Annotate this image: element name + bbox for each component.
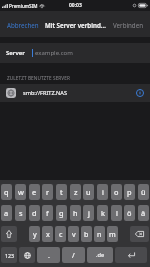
- button[interactable]: e: [29, 184, 40, 200]
- staticText: 00:03: [69, 2, 82, 9]
- staticText: y: [33, 229, 37, 239]
- staticText: r: [46, 187, 50, 197]
- staticText: j: [88, 208, 90, 218]
- button[interactable]: Verbinden: [113, 11, 150, 29]
- staticText: PremiumSIM: [9, 3, 38, 9]
- staticText: ö: [127, 208, 132, 218]
- button[interactable]: b: [81, 226, 92, 242]
- button[interactable]: j: [83, 205, 94, 221]
- button[interactable]: l: [111, 205, 122, 221]
- button[interactable]: ä: [138, 205, 149, 221]
- staticText: h: [73, 208, 78, 218]
- staticText: p: [127, 187, 132, 197]
- button[interactable]: a: [1, 205, 12, 221]
- staticText: f: [46, 208, 49, 218]
- button[interactable]: d: [29, 205, 40, 221]
- staticText: t: [60, 187, 63, 197]
- staticText: q: [4, 187, 9, 197]
- staticText: ü: [141, 187, 146, 197]
- staticText: x: [46, 229, 50, 239]
- button[interactable]: Return: [115, 247, 147, 263]
- button[interactable]: q: [1, 184, 12, 200]
- button[interactable]: x: [42, 226, 53, 242]
- button[interactable]: i: [97, 184, 108, 200]
- staticText: example.com: [35, 49, 73, 57]
- staticText: u: [86, 187, 91, 197]
- staticText: m: [109, 229, 116, 239]
- button[interactable]: r: [42, 184, 53, 200]
- staticText: s: [19, 208, 23, 218]
- staticText: i: [102, 187, 104, 197]
- button[interactable]: k: [97, 205, 108, 221]
- button[interactable]: z: [70, 184, 81, 200]
- staticText: v: [72, 229, 76, 239]
- staticText: l: [116, 208, 118, 218]
- staticText: w: [18, 187, 24, 197]
- staticText: /: [72, 250, 75, 260]
- button[interactable]: Change keyboard: [19, 247, 35, 263]
- button[interactable]: /: [62, 247, 85, 263]
- button[interactable]: .de: [87, 247, 113, 263]
- staticText: smb://FRITZ.NAS: [23, 89, 67, 97]
- button[interactable]: w: [15, 184, 26, 200]
- staticText: k: [101, 208, 105, 218]
- button[interactable]: m: [107, 226, 118, 242]
- staticText: .de: [96, 251, 105, 259]
- staticText: e: [32, 187, 37, 197]
- button[interactable]: Shift: [1, 226, 17, 242]
- staticText: g: [59, 208, 64, 218]
- button[interactable]: smb://FRITZ.NAS: [0, 84, 150, 102]
- staticText: n: [97, 229, 102, 239]
- staticText: .: [48, 250, 50, 260]
- staticText: 123: [5, 252, 14, 259]
- button[interactable]: u: [83, 184, 94, 200]
- button[interactable]: c: [55, 226, 66, 242]
- button[interactable]: p: [124, 184, 135, 200]
- button[interactable]: ü: [138, 184, 149, 200]
- staticText: Mit Server verbind…: [45, 21, 106, 29]
- button[interactable]: s: [15, 205, 26, 221]
- button[interactable]: n: [94, 226, 105, 242]
- button[interactable]: f: [42, 205, 53, 221]
- button[interactable]: o: [111, 184, 122, 200]
- staticText: ZULETZT BENUTZTE SERVER: [7, 75, 70, 81]
- button[interactable]: ö: [124, 205, 135, 221]
- staticText: b: [84, 229, 89, 239]
- button[interactable]: Abbrechen: [0, 11, 39, 29]
- button[interactable]: 123: [1, 247, 17, 263]
- staticText: c: [59, 229, 63, 239]
- button[interactable]: .: [37, 247, 60, 263]
- staticText: Server: [6, 49, 25, 57]
- button[interactable]: t: [56, 184, 67, 200]
- button[interactable]: h: [70, 205, 81, 221]
- button[interactable]: Backspace: [130, 226, 149, 242]
- button[interactable]: y: [29, 226, 40, 242]
- staticText: ä: [141, 208, 146, 218]
- staticText: o: [114, 187, 119, 197]
- staticText: d: [32, 208, 37, 218]
- button[interactable]: g: [56, 205, 67, 221]
- staticText: z: [74, 187, 78, 197]
- button[interactable]: v: [68, 226, 79, 242]
- staticText: a: [4, 208, 9, 218]
- button[interactable]: Info: [136, 89, 144, 97]
